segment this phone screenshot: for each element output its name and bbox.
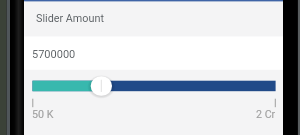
staticText: 50 K [32, 108, 54, 121]
staticText: Slider Amount [36, 12, 104, 25]
button[interactable]: 5700000 [24, 36, 283, 70]
staticText: 2 Cr [256, 108, 276, 121]
button[interactable]: Slider amount, 5700000 [24, 70, 283, 135]
staticText: 5700000 [32, 48, 76, 61]
button[interactable]: Slider Amount [24, 1, 283, 36]
